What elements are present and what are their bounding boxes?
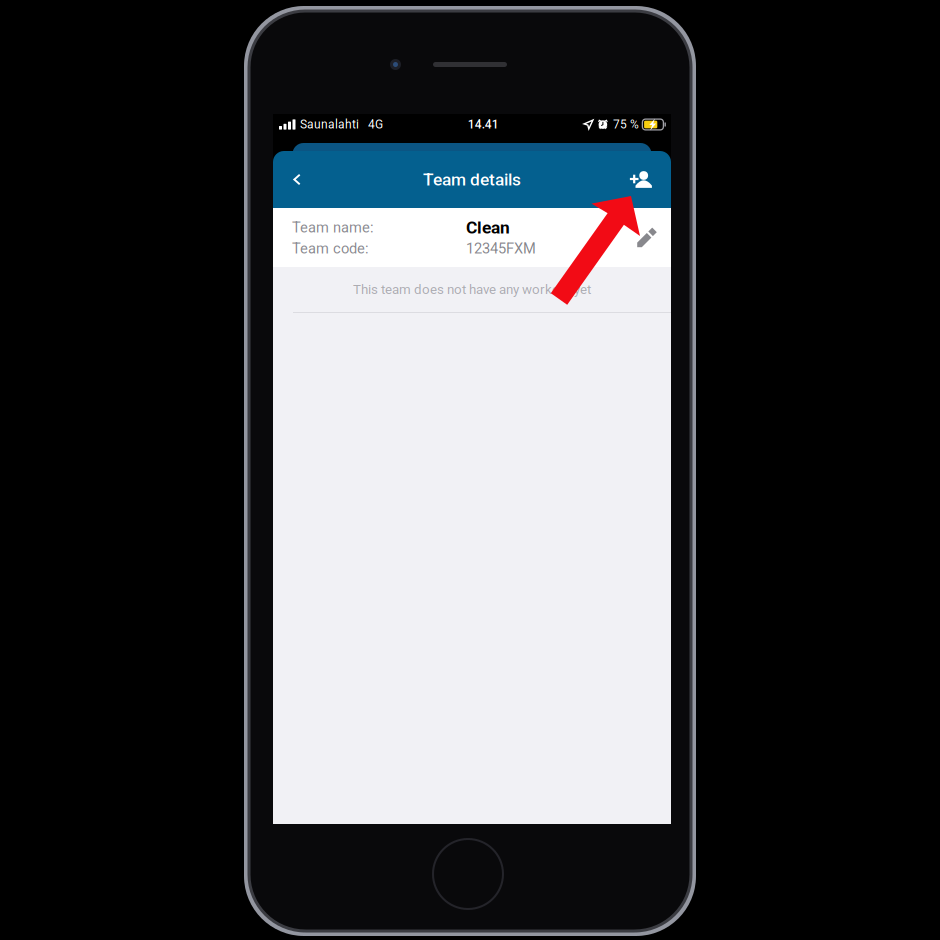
staticText: 75 % bbox=[613, 117, 639, 132]
staticText: This team does not have any workers yet bbox=[353, 282, 591, 297]
staticText: Clean bbox=[466, 217, 510, 238]
staticText: 4G bbox=[368, 117, 383, 132]
button[interactable]: Edit team bbox=[625, 216, 669, 260]
staticText: 14.41 bbox=[468, 117, 499, 132]
staticText: Saunalahti bbox=[300, 117, 359, 132]
button[interactable]: Add member bbox=[619, 151, 663, 208]
button[interactable]: Back bbox=[275, 151, 319, 208]
staticText: Team name: bbox=[292, 219, 374, 236]
staticText: Team code: bbox=[292, 240, 369, 257]
staticText: 12345FXM bbox=[466, 240, 536, 257]
staticText: Team details bbox=[423, 169, 521, 190]
